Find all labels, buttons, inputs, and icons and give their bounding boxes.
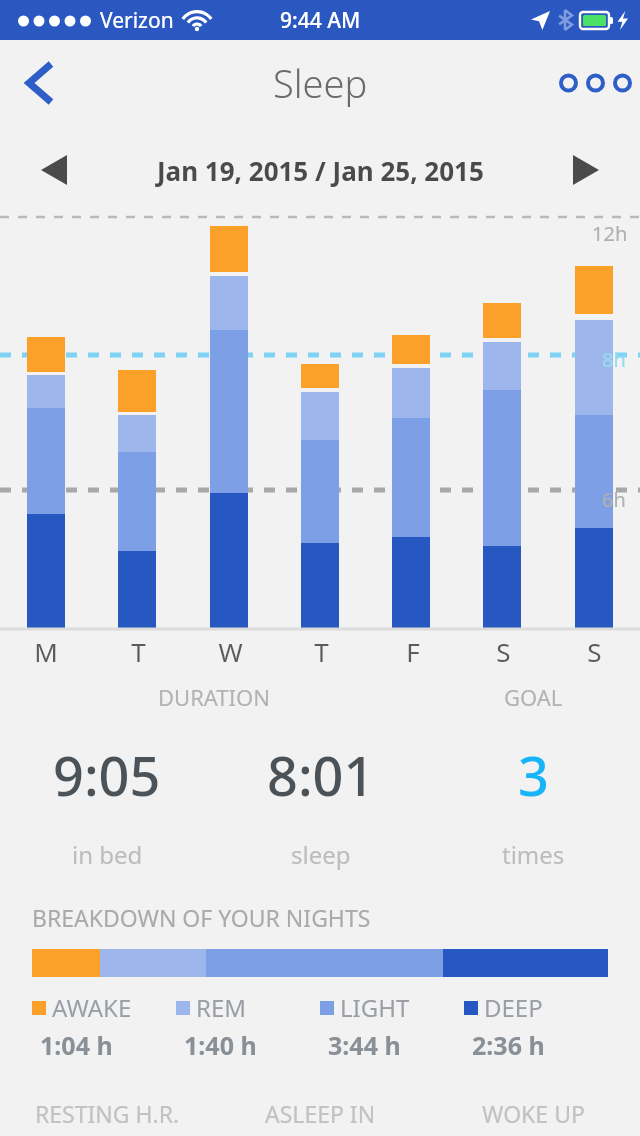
staticText: times xyxy=(502,838,565,871)
staticText: DEEP xyxy=(484,991,543,1024)
button[interactable]: Previous week xyxy=(28,144,80,196)
button[interactable]: 8:01 xyxy=(214,738,427,871)
staticText: LIGHT xyxy=(340,991,410,1024)
staticText: sleep xyxy=(291,838,351,871)
staticText: ASLEEP IN xyxy=(265,1098,376,1129)
staticText: S xyxy=(496,634,511,669)
staticText: WOKE UP xyxy=(482,1098,585,1129)
staticText: AWAKE xyxy=(52,991,132,1024)
staticText: BREAKDOWN OF YOUR NIGHTS xyxy=(32,902,371,933)
staticText: 8h xyxy=(602,346,626,373)
button[interactable]: REM xyxy=(176,991,320,1062)
button[interactable]: AWAKE xyxy=(32,991,176,1062)
staticText: 6h xyxy=(602,486,626,513)
staticText: REM xyxy=(196,991,247,1024)
staticText: 9:05 xyxy=(53,738,161,812)
staticText: 1:40 h xyxy=(184,1028,257,1062)
staticText: T xyxy=(314,634,329,669)
staticText: RESTING H.R. xyxy=(35,1098,180,1129)
staticText: Sleep xyxy=(273,57,368,109)
button[interactable]: Next week xyxy=(560,144,612,196)
staticText: 3:44 h xyxy=(328,1028,401,1062)
staticText: T xyxy=(131,634,146,669)
button[interactable]: LIGHT xyxy=(320,991,464,1062)
staticText: F xyxy=(406,634,420,669)
staticText: M xyxy=(34,634,58,669)
staticText: Jan 19, 2015 / Jan 25, 2015 xyxy=(157,153,484,188)
button[interactable]: 3 xyxy=(427,738,640,871)
staticText: Verizon xyxy=(100,6,174,35)
staticText: S xyxy=(587,634,602,669)
staticText: 12h xyxy=(592,220,628,247)
staticText: DURATION xyxy=(158,682,270,712)
staticText: 9:44 AM xyxy=(280,6,361,35)
button[interactable]: 9:05 xyxy=(0,738,214,871)
button[interactable]: More options xyxy=(544,40,640,126)
staticText: in bed xyxy=(72,838,143,871)
staticText: 8:01 xyxy=(267,738,375,812)
button[interactable]: Back xyxy=(0,40,78,126)
staticText: 1:04 h xyxy=(40,1028,113,1062)
staticText: GOAL xyxy=(504,682,563,712)
staticText: 3 xyxy=(518,738,549,812)
staticText: W xyxy=(218,634,243,669)
button[interactable]: DEEP xyxy=(464,991,608,1062)
staticText: 2:36 h xyxy=(472,1028,545,1062)
